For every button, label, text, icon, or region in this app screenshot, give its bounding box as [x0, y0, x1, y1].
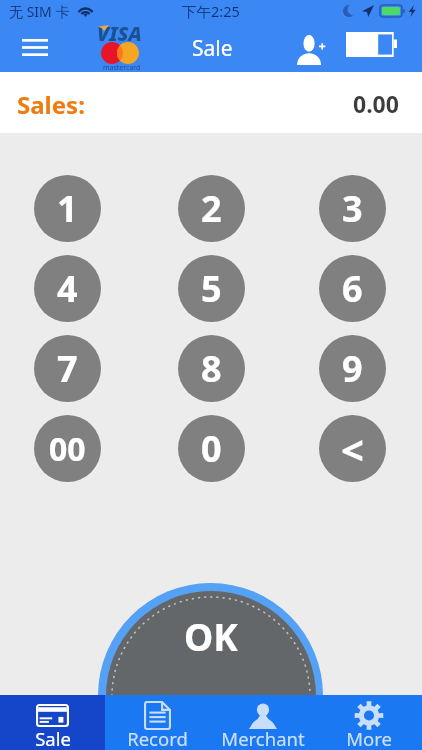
button[interactable]: 4	[34, 255, 101, 322]
button[interactable]: 6	[319, 255, 386, 322]
button[interactable]: <	[319, 415, 386, 482]
button[interactable]: Sale	[0, 695, 105, 750]
button[interactable]: 00	[34, 415, 101, 482]
button[interactable]: 2	[178, 175, 245, 242]
staticText: 2	[201, 184, 222, 233]
button[interactable]: Add user	[289, 30, 332, 70]
staticText: Record	[127, 726, 188, 750]
button[interactable]: OK	[98, 583, 323, 750]
staticText: Sales:	[17, 88, 85, 121]
button[interactable]: Merchant	[210, 695, 316, 750]
staticText: More	[346, 726, 392, 750]
staticText: 下午2:25	[182, 1, 240, 21]
staticText: Sale	[35, 726, 71, 750]
button[interactable]: Menu	[11, 28, 59, 66]
staticText: 8	[201, 344, 222, 393]
staticText: 9	[342, 344, 363, 393]
staticText: 5	[201, 264, 222, 313]
staticText: Sale	[192, 34, 233, 63]
staticText: 0.00	[353, 88, 399, 119]
staticText: 1	[57, 184, 78, 233]
staticText: VISA	[97, 20, 142, 47]
staticText: 7	[57, 344, 78, 393]
button[interactable]: 3	[319, 175, 386, 242]
button[interactable]: More	[316, 695, 422, 750]
button[interactable]: 0	[178, 415, 245, 482]
button[interactable]: 8	[178, 335, 245, 402]
button[interactable]: Battery	[340, 27, 402, 62]
button[interactable]: 5	[178, 255, 245, 322]
staticText: mastercard	[103, 63, 141, 73]
button[interactable]: 9	[319, 335, 386, 402]
button[interactable]: 1	[34, 175, 101, 242]
staticText: 无 SIM 卡	[9, 2, 70, 21]
staticText: 6	[342, 264, 363, 313]
button[interactable]: 7	[34, 335, 101, 402]
staticText: Merchant	[221, 726, 305, 750]
staticText: 3	[342, 184, 363, 233]
staticText: OK	[184, 611, 238, 661]
staticText: 0	[201, 424, 222, 473]
staticText: 00	[49, 427, 86, 471]
staticText: 4	[57, 264, 78, 313]
button[interactable]: Record	[105, 695, 210, 750]
staticText: <	[341, 422, 364, 476]
